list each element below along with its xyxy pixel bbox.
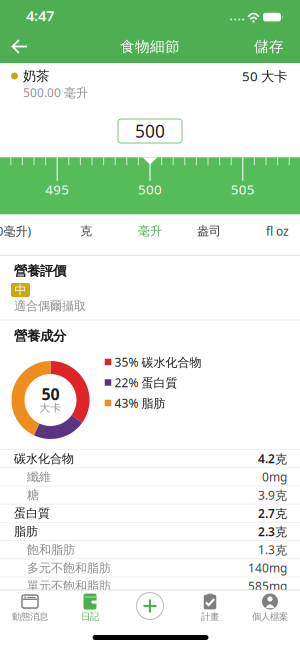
staticText: 50 [41,383,59,405]
staticText: 140mg [248,560,287,576]
staticText: 500 [135,119,165,142]
staticText: 蛋白質 [14,506,50,521]
staticText: 多元不飽和脂肪 [27,560,111,575]
staticText: 毫升 [138,224,162,238]
staticText: fl oz [266,223,289,239]
button[interactable]: 動態消息 [1,592,59,624]
staticText: 碳水化合物 [14,451,74,466]
staticText: 22% 蛋白質 [114,374,177,390]
button[interactable]: 克 [69,221,103,241]
staticText: 盎司 [197,224,221,238]
staticText: 飽和脂肪 [27,542,75,557]
staticText: 奶茶 [23,68,49,84]
staticText: 儲存 [254,37,284,55]
button[interactable]: 日記 [61,592,119,624]
staticText: 大卡 [39,401,61,414]
staticText: 4:47 [26,6,54,25]
button[interactable]: 個人檔案 [241,592,299,624]
staticText: 4.2克 [258,451,287,467]
staticText: 2.7克 [258,505,287,521]
staticText: 500 [138,180,162,198]
staticText: 個人檔案 [252,611,288,622]
staticText: 食物細節 [120,37,180,55]
button[interactable]: 數量 500 [118,119,182,143]
staticText: 適合偶爾攝取 [14,299,86,313]
staticText: 495 [45,180,69,198]
button[interactable]: fl oz [259,221,295,241]
staticText: 單元不飽和脂肪 [27,579,111,593]
staticText: 纖維 [27,469,51,484]
staticText: 脂肪 [14,524,38,539]
staticText: 50 大卡 [242,67,287,85]
staticText: 0mg [262,469,287,485]
staticText: 日記 [81,611,99,622]
button[interactable]: 毫升 [130,221,170,241]
staticText: 505 [231,180,255,198]
staticText: 克 [80,224,92,238]
staticText: 計畫 [201,611,219,622]
staticText: 0毫升) [0,223,31,239]
button[interactable]: 新增 [134,590,166,622]
staticText: 35% 碳水化合物 [114,354,201,370]
staticText: 動態消息 [12,611,48,622]
button[interactable]: Back [4,35,34,57]
staticText: 2.3克 [258,523,287,539]
staticText: 營養成分 [14,328,66,344]
button[interactable]: 盎司 [189,221,229,241]
staticText: 營養評價 [14,263,66,279]
staticText: 43% 脂肪 [114,395,165,411]
staticText: 糖 [27,488,39,502]
staticText: 500.00 毫升 [23,84,88,100]
staticText: 中 [14,283,26,297]
staticText: 3.9克 [258,487,287,503]
staticText: 1.3克 [258,542,287,558]
staticText: 585mg [248,578,287,594]
button[interactable]: (500毫升) [0,221,37,241]
button[interactable]: 計畫 [181,592,239,624]
button[interactable]: 儲存 [247,35,291,57]
